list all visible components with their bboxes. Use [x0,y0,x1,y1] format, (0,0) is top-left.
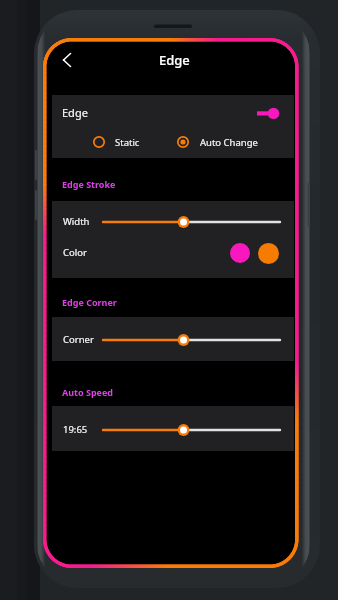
button[interactable]: Slider [103,331,280,349]
staticText: Corner [63,333,94,346]
staticText: Color [63,246,87,259]
button[interactable]: Slider [103,213,280,231]
staticText: 19:65 [63,423,88,436]
button[interactable]: Auto Change [177,133,258,151]
staticText: Edge [159,51,190,69]
button[interactable]: Back [53,47,79,73]
button[interactable]: Edge Stroke [50,172,190,198]
button[interactable]: Slider [103,421,280,439]
staticText: Width [63,215,90,228]
staticText: Edge Stroke [62,178,116,190]
staticText: Auto Change [200,136,258,149]
staticText: Edge [62,105,88,120]
button[interactable]: Pink colour [230,243,250,263]
button[interactable]: Auto Speed [50,380,190,406]
staticText: Static [115,136,140,149]
staticText: Edge Corner [62,296,117,308]
staticText: Auto Speed [62,386,114,398]
button[interactable]: Edge toggle [250,104,286,124]
button[interactable]: Orange colour [258,243,279,264]
button[interactable]: Static [93,133,140,151]
button[interactable]: Edge Corner [50,290,190,316]
button[interactable]: Edge [52,95,294,131]
